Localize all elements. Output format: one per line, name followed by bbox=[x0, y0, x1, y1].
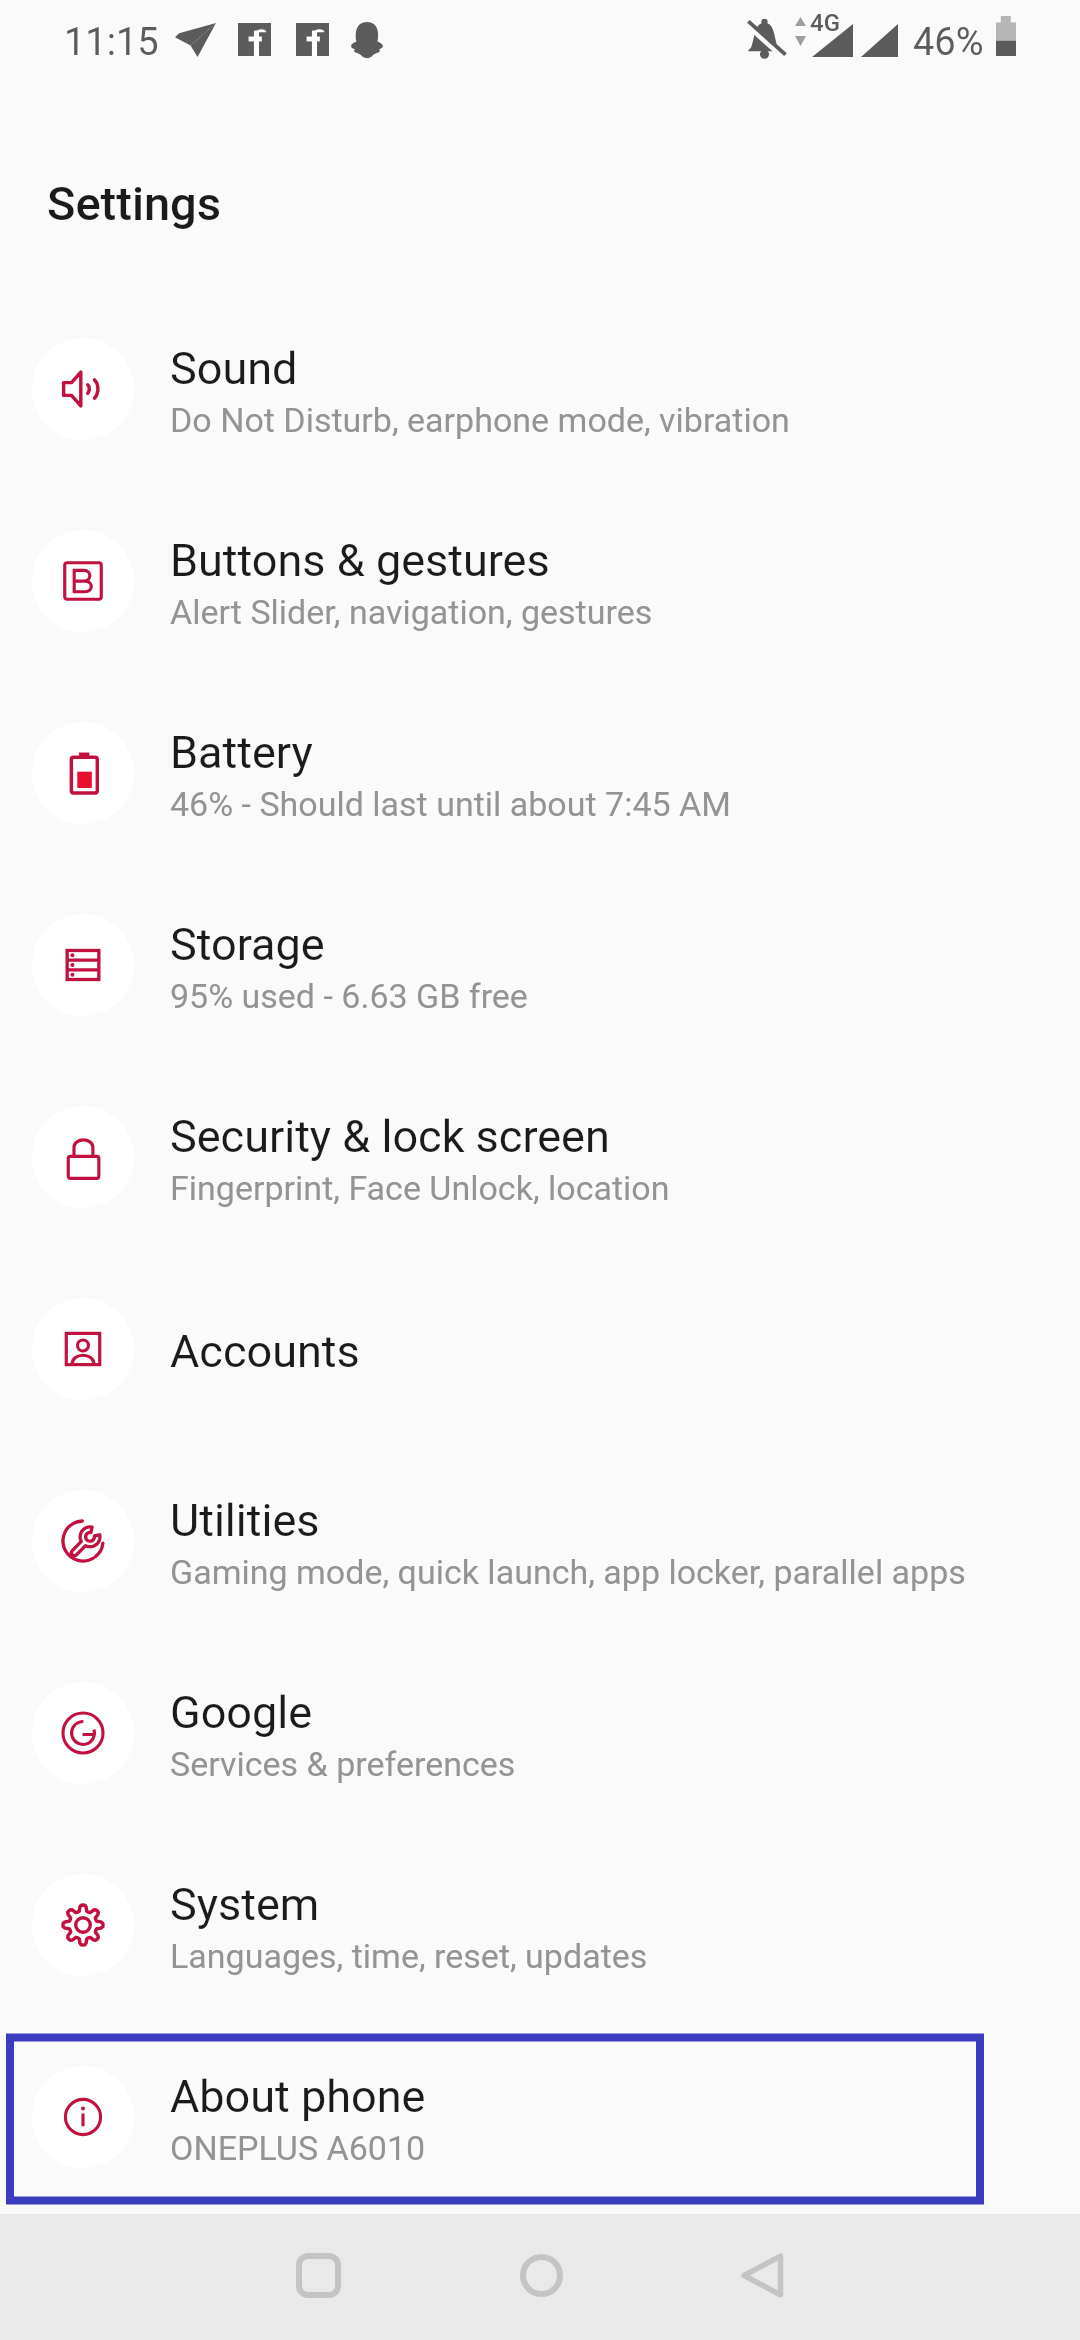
button[interactable]: Accounts bbox=[0, 1253, 1080, 1445]
button[interactable]: About phone bbox=[0, 2021, 1080, 2213]
button[interactable]: System bbox=[0, 1829, 1080, 2021]
staticText: Sound bbox=[170, 342, 298, 395]
staticText: Buttons & gestures bbox=[170, 534, 550, 587]
button[interactable]: Security & lock screen bbox=[0, 1061, 1080, 1253]
staticText: System bbox=[170, 1878, 320, 1931]
button[interactable]: Google bbox=[0, 1637, 1080, 1829]
staticText: Google bbox=[170, 1686, 313, 1739]
staticText: Security & lock screen bbox=[170, 1110, 610, 1163]
staticText: Alert Slider, navigation, gestures bbox=[170, 592, 653, 632]
staticText: 46% bbox=[913, 20, 984, 65]
button[interactable]: Home bbox=[485, 2219, 597, 2331]
staticText: Accounts bbox=[170, 1325, 360, 1378]
button[interactable]: Recents bbox=[262, 2219, 374, 2331]
button[interactable]: Storage bbox=[0, 869, 1080, 1061]
staticText: Utilities bbox=[170, 1494, 320, 1547]
staticText: Fingerprint, Face Unlock, location bbox=[170, 1168, 670, 1208]
staticText: 11:15 bbox=[64, 20, 159, 65]
staticText: Settings bbox=[47, 176, 222, 231]
button[interactable]: Sound bbox=[0, 293, 1080, 485]
button[interactable]: Buttons & gestures bbox=[0, 485, 1080, 677]
button[interactable]: Back bbox=[706, 2219, 818, 2331]
staticText: Gaming mode, quick launch, app locker, p… bbox=[170, 1552, 966, 1592]
button[interactable]: Utilities bbox=[0, 1445, 1080, 1637]
staticText: Do Not Disturb, earphone mode, vibration bbox=[170, 400, 790, 440]
staticText: Battery bbox=[170, 726, 313, 779]
staticText: Languages, time, reset, updates bbox=[170, 1936, 648, 1976]
staticText: About phone bbox=[170, 2070, 426, 2123]
staticText: ONEPLUS A6010 bbox=[170, 2128, 426, 2168]
staticText: 46% - Should last until about 7:45 AM bbox=[170, 784, 731, 824]
staticText: 4G bbox=[810, 9, 840, 37]
staticText: Storage bbox=[170, 918, 325, 971]
staticText: Services & preferences bbox=[170, 1744, 516, 1784]
staticText: 95% used - 6.63 GB free bbox=[170, 976, 528, 1016]
button[interactable]: Battery bbox=[0, 677, 1080, 869]
